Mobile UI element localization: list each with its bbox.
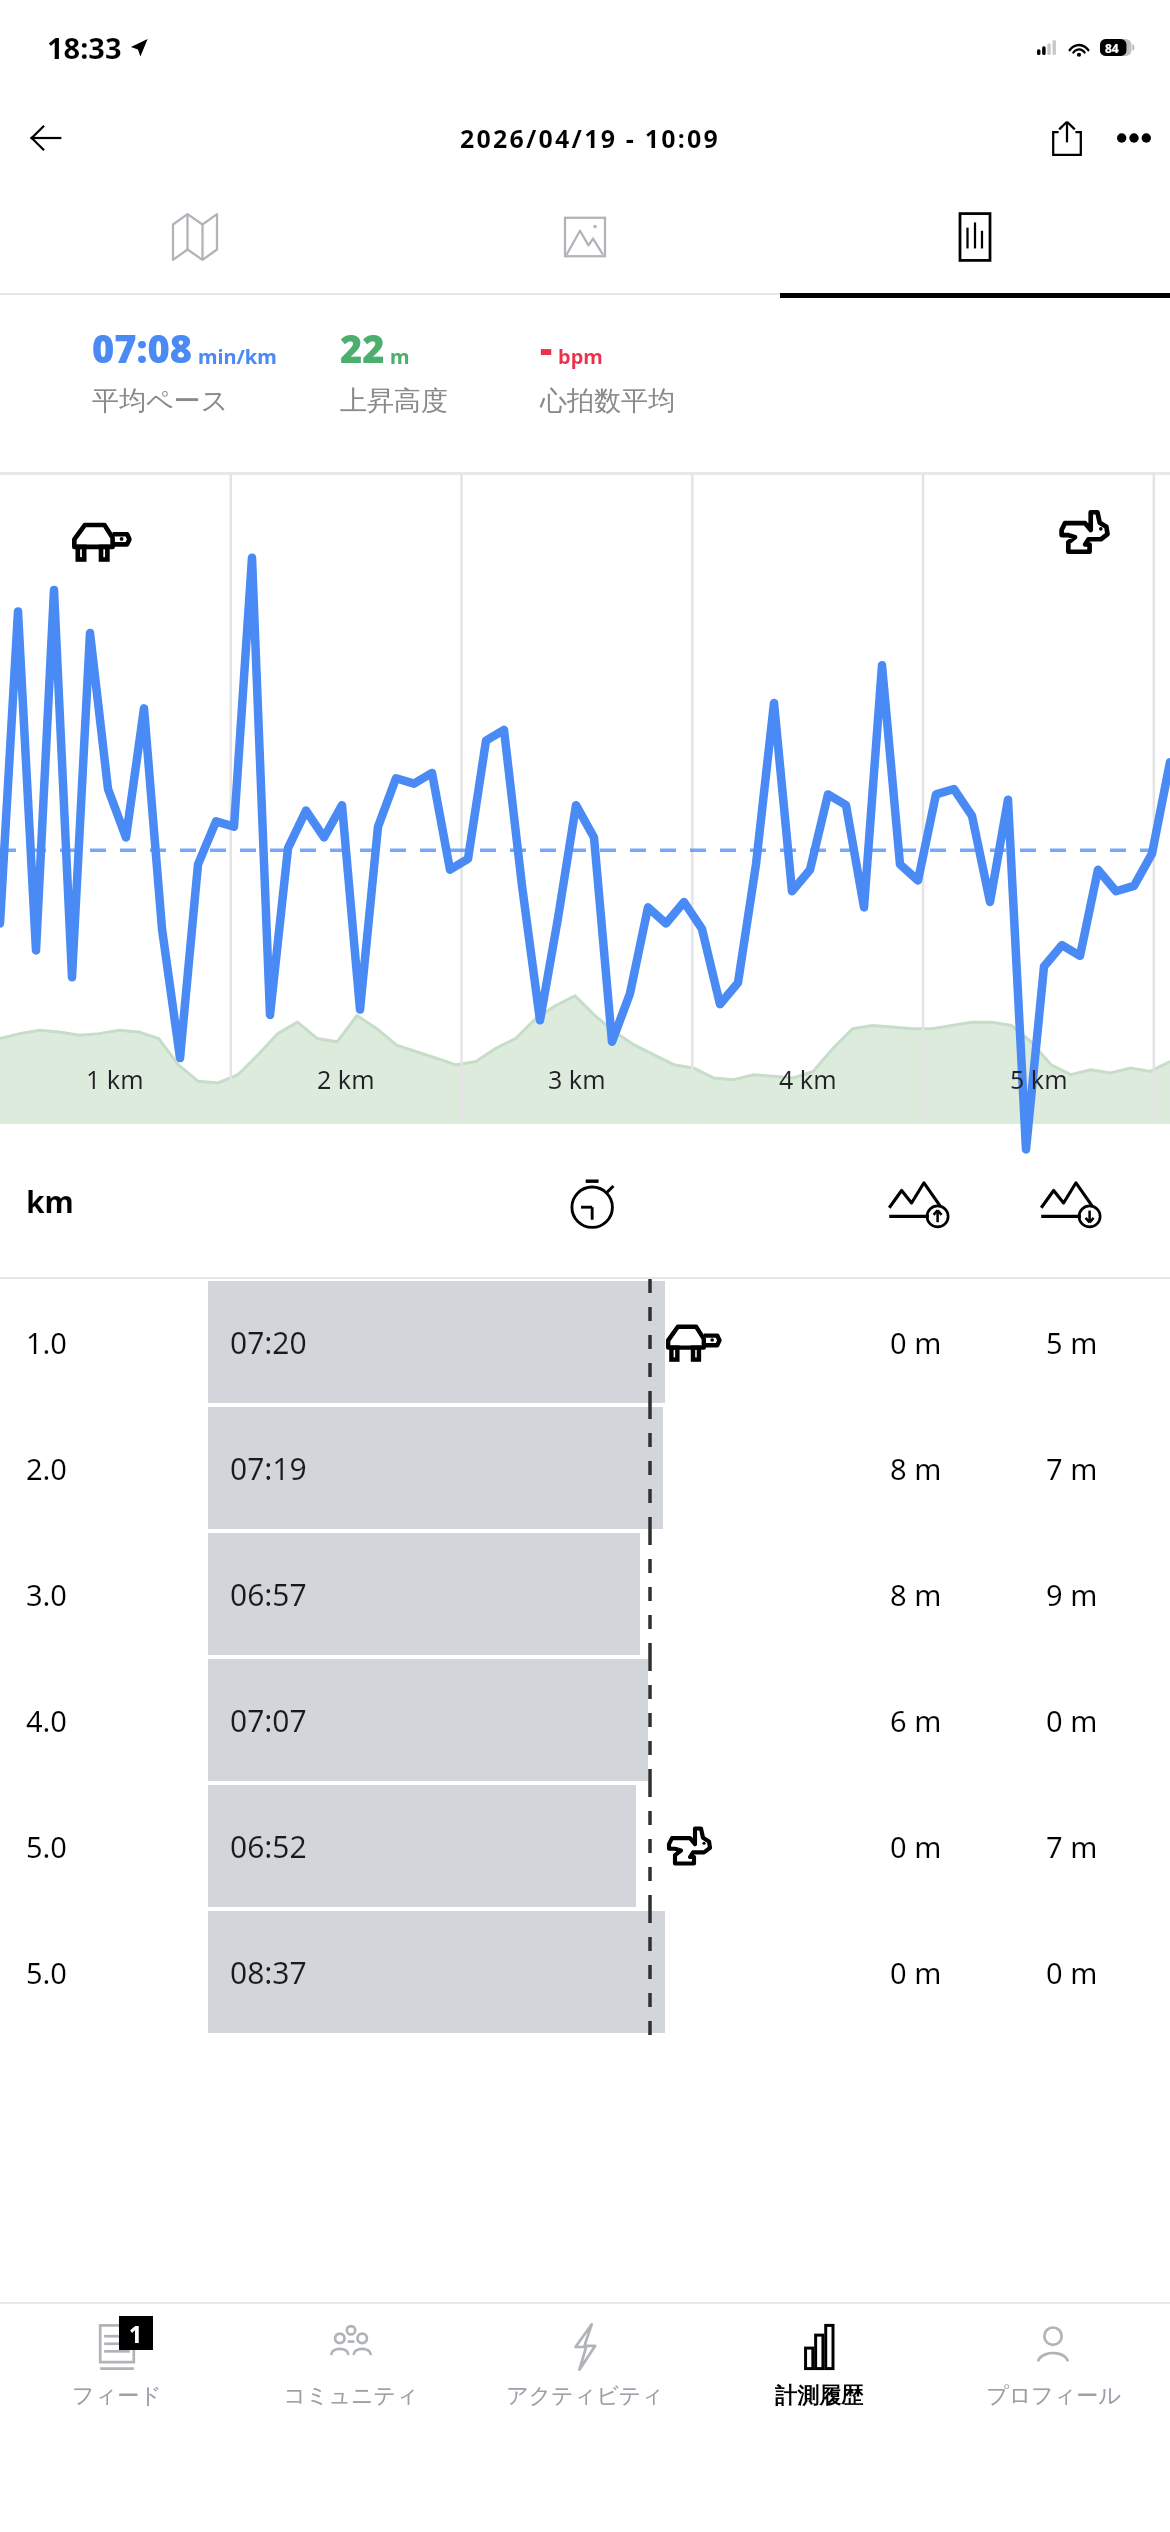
staticText: フィード [72, 2382, 162, 2410]
staticText: 5 m [1046, 1323, 1098, 1362]
staticText: 2026/04/19 - 10:09 [460, 121, 720, 155]
staticText: 2.0 [26, 1449, 67, 1488]
staticText: 06:57 [230, 1574, 307, 1615]
staticText: m [390, 343, 410, 370]
staticText: 3 km [548, 1062, 606, 1096]
staticText: 計測履歴 [775, 2382, 863, 2410]
staticText: 5 km [1010, 1062, 1068, 1096]
staticText: 0 m [1046, 1701, 1098, 1740]
staticText: 0 m [890, 1323, 942, 1362]
staticText: 6 m [890, 1701, 942, 1740]
button[interactable]: Map tab [0, 181, 390, 293]
staticText: 4.0 [26, 1701, 67, 1740]
button[interactable]: プロフィール [936, 2304, 1170, 2454]
staticText: 1 [129, 2318, 143, 2349]
staticText: 5.0 [26, 1827, 67, 1866]
button[interactable]: 計測履歴 [702, 2304, 936, 2454]
button[interactable]: Charts tab [780, 181, 1170, 293]
staticText: 8 m [890, 1575, 942, 1614]
staticText: 9 m [1046, 1575, 1098, 1614]
staticText: 1 km [86, 1062, 144, 1096]
staticText: 07:20 [230, 1322, 307, 1363]
staticText: 1.0 [26, 1323, 67, 1362]
button[interactable]: 3.0 [0, 1531, 1170, 1657]
button[interactable]: コミュニティ [234, 2304, 468, 2454]
staticText: 4 km [779, 1062, 837, 1096]
staticText: コミュニティ [283, 2382, 419, 2410]
staticText: 06:52 [230, 1826, 307, 1867]
staticText: 0 m [890, 1827, 942, 1866]
staticText: プロフィール [986, 2382, 1121, 2410]
staticText: min/km [198, 343, 277, 370]
staticText: - [540, 322, 553, 374]
staticText: 0 m [1046, 1953, 1098, 1992]
staticText: 08:37 [230, 1952, 307, 1993]
staticText: bpm [558, 343, 603, 370]
staticText: 7 m [1046, 1827, 1098, 1866]
staticText: アクティビティ [506, 2382, 664, 2410]
staticText: 3.0 [26, 1575, 67, 1614]
button[interactable]: Share [1036, 107, 1098, 169]
button[interactable]: 1.0 [0, 1279, 1170, 1405]
staticText: 5.0 [26, 1953, 67, 1992]
button[interactable]: 5.0 [0, 1783, 1170, 1909]
staticText: 7 m [1046, 1449, 1098, 1488]
staticText: km [26, 1181, 74, 1222]
button[interactable]: 5.0 [0, 1909, 1170, 2035]
staticText: 心拍数平均 [540, 384, 675, 418]
button[interactable]: 1 [0, 2304, 234, 2454]
staticText: 18:33 [47, 28, 122, 67]
staticText: 22 [340, 322, 385, 374]
button[interactable]: Back [18, 110, 74, 166]
button[interactable]: アクティビティ [468, 2304, 702, 2454]
staticText: 07:08 [92, 322, 193, 374]
button[interactable]: 4.0 [0, 1657, 1170, 1783]
staticText: 0 m [890, 1953, 942, 1992]
staticText: 84 [1105, 40, 1119, 56]
button[interactable]: More options [1098, 102, 1170, 174]
staticText: 8 m [890, 1449, 942, 1488]
button[interactable]: Photos tab [390, 181, 780, 293]
staticText: 上昇高度 [340, 384, 448, 418]
staticText: 07:07 [230, 1700, 307, 1741]
button[interactable]: 2.0 [0, 1405, 1170, 1531]
staticText: 07:19 [230, 1448, 307, 1489]
staticText: 平均ペース [92, 384, 229, 418]
staticText: 2 km [317, 1062, 375, 1096]
